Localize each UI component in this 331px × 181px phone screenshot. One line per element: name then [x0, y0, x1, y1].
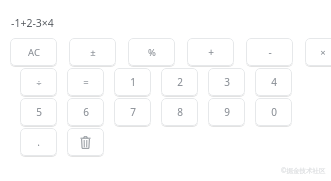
button[interactable]: .	[20, 128, 57, 156]
staticText: 8	[177, 105, 183, 119]
staticText: -	[268, 45, 272, 59]
button[interactable]: -	[246, 38, 293, 66]
staticText: 3	[224, 75, 230, 89]
button[interactable]: %	[128, 38, 175, 66]
button[interactable]: Delete	[67, 128, 104, 156]
staticText: %	[148, 46, 156, 59]
button[interactable]: 6	[67, 98, 104, 126]
button[interactable]: 3	[208, 68, 245, 96]
staticText: .	[37, 135, 40, 149]
button[interactable]: 5	[20, 98, 57, 126]
button[interactable]: 4	[255, 68, 292, 96]
button[interactable]: 0	[255, 98, 292, 126]
staticText: =	[83, 76, 89, 89]
button[interactable]: 1	[114, 68, 151, 96]
button[interactable]: ±	[69, 38, 116, 66]
staticText: ±	[90, 46, 96, 59]
button[interactable]: 9	[208, 98, 245, 126]
button[interactable]: ×	[305, 38, 331, 66]
staticText: 9	[224, 105, 230, 119]
staticText: +	[208, 45, 214, 59]
staticText: 6	[83, 105, 89, 119]
staticText: 7	[130, 105, 136, 119]
staticText: -1+2-3×4	[11, 16, 54, 30]
staticText: 1	[130, 75, 136, 89]
button[interactable]: 7	[114, 98, 151, 126]
button[interactable]: +	[187, 38, 234, 66]
button[interactable]: =	[67, 68, 104, 96]
staticText: 4	[271, 75, 277, 89]
staticText: 5	[36, 105, 42, 119]
button[interactable]: ÷	[20, 68, 57, 96]
staticText: ©掘金技术社区	[281, 166, 326, 175]
staticText: AC	[28, 46, 40, 59]
button[interactable]: 2	[161, 68, 198, 96]
staticText: 0	[271, 105, 277, 119]
staticText: ÷	[36, 76, 42, 89]
staticText: ×	[320, 46, 326, 59]
staticText: 2	[177, 75, 183, 89]
button[interactable]: 8	[161, 98, 198, 126]
button[interactable]: AC	[10, 38, 57, 66]
